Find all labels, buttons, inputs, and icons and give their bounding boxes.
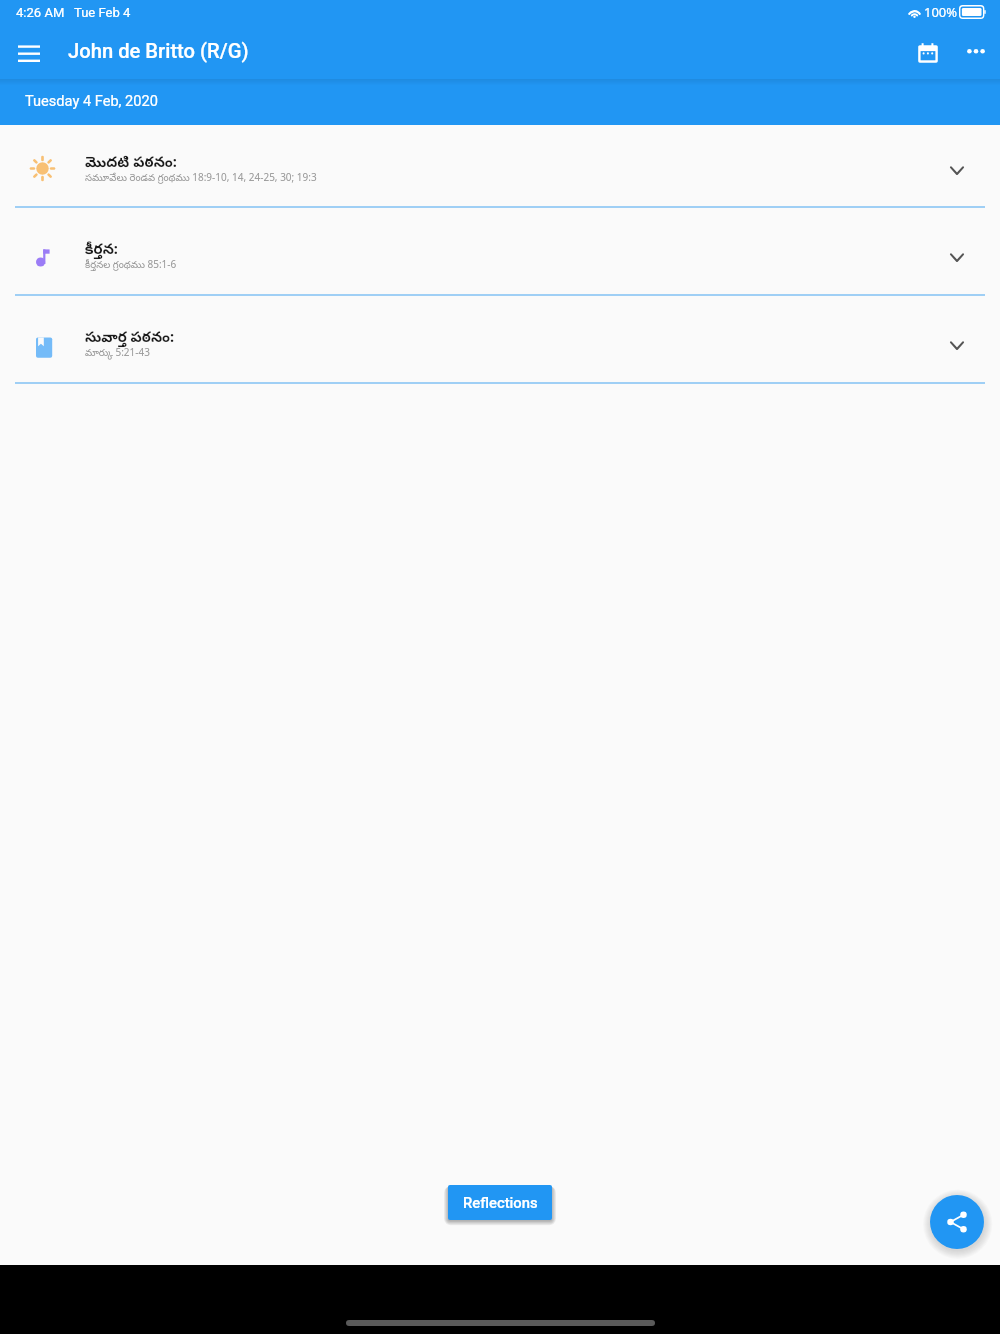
button[interactable]: More options [952,30,1000,78]
button[interactable]: Share [930,1195,984,1249]
staticText: 100% [924,3,958,21]
staticText: సువార్త పఠనం: [85,326,175,349]
staticText: కీర్తన: [85,238,118,261]
button[interactable]: Calendar [904,30,952,78]
staticText: మొదటి పఠనం: [85,151,177,174]
staticText: Reflections [463,1194,538,1211]
staticText: మార్కు 5:21-43 [85,345,150,361]
button[interactable]: మొదటి పఠనం: [0,125,1000,208]
staticText: Tue Feb 4 [74,5,131,20]
staticText: Tuesday 4 Feb, 2020 [25,92,158,109]
staticText: 4:26 AM [16,5,65,20]
button[interactable]: Menu [3,28,54,79]
button[interactable]: Reflections [448,1185,552,1220]
staticText: John de Britto (R/G) [68,39,249,63]
button[interactable]: కీర్తన: [0,208,1000,296]
staticText: కీర్తనల గ్రంథము 85:1-6 [85,257,177,273]
button[interactable]: సువార్త పఠనం: [0,296,1000,384]
staticText: సమూవేలు రెండవ గ్రంథము 18:9-10, 14, 24-25… [85,170,317,186]
